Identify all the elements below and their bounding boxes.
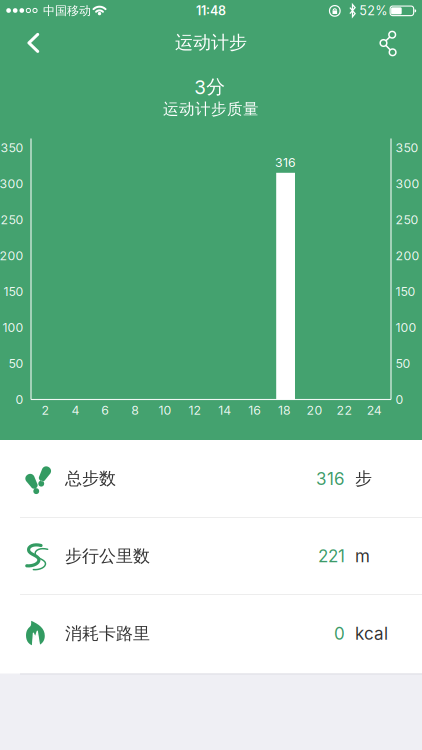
staticText: 52% xyxy=(359,3,387,18)
staticText: 20 xyxy=(306,403,322,418)
staticText: 2 xyxy=(41,403,49,418)
staticText: 步 xyxy=(355,468,372,489)
staticText: 22 xyxy=(336,403,352,418)
staticText: 14 xyxy=(218,403,231,418)
button[interactable] xyxy=(366,21,410,65)
staticText: 100 xyxy=(395,320,416,335)
staticText: 运动计步质量 xyxy=(163,99,259,119)
staticText: 0 xyxy=(334,623,345,644)
staticText: 250 xyxy=(0,212,23,227)
staticText: 50 xyxy=(395,356,410,371)
staticText: 11:48 xyxy=(196,3,226,18)
staticText: 10 xyxy=(159,403,172,418)
staticText: 4 xyxy=(71,403,79,418)
staticText: 300 xyxy=(0,176,23,191)
staticText: kcal xyxy=(355,623,388,644)
staticText: 步行公里数 xyxy=(65,545,150,567)
staticText: 200 xyxy=(395,248,419,263)
staticText: 316 xyxy=(275,155,296,170)
staticText: 200 xyxy=(0,248,23,263)
staticText: 350 xyxy=(0,140,23,155)
staticText: 消耗卡路里 xyxy=(65,623,150,644)
button[interactable]: 步行公里数 xyxy=(0,517,422,594)
button[interactable] xyxy=(11,21,55,65)
staticText: 50 xyxy=(8,356,23,371)
staticText: 100 xyxy=(2,320,23,335)
staticText: 6 xyxy=(101,403,109,418)
button[interactable]: 总步数 xyxy=(0,440,422,517)
staticText: 150 xyxy=(3,284,23,299)
staticText: 12 xyxy=(188,403,201,418)
staticText: 316 xyxy=(316,468,345,489)
staticText: 运动计步 xyxy=(175,31,247,54)
staticText: 0 xyxy=(15,392,23,407)
staticText: 3分 xyxy=(194,75,225,99)
staticText: 250 xyxy=(395,212,418,227)
staticText: m xyxy=(355,546,370,566)
staticText: 中国移动 xyxy=(43,3,91,18)
staticText: 8 xyxy=(131,403,139,418)
staticText: 221 xyxy=(318,546,345,566)
staticText: 0 xyxy=(395,392,403,407)
staticText: 18 xyxy=(278,403,291,418)
staticText: 16 xyxy=(248,403,261,418)
staticText: 150 xyxy=(395,284,415,299)
staticText: 24 xyxy=(367,403,382,418)
staticText: 总步数 xyxy=(65,468,116,489)
button[interactable]: 消耗卡路里 xyxy=(0,595,422,672)
staticText: 300 xyxy=(395,176,419,191)
staticText: 350 xyxy=(395,140,418,155)
